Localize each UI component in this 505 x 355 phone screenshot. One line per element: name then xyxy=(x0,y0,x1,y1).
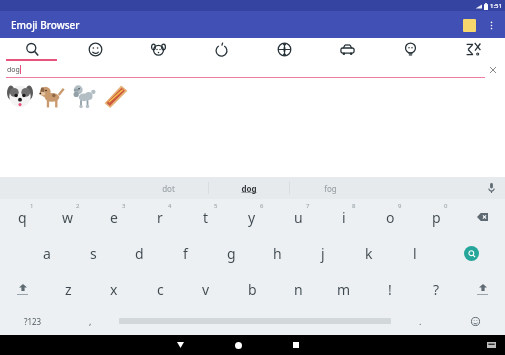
staticText: 3 xyxy=(122,202,126,210)
button[interactable]: car xyxy=(316,38,379,61)
button[interactable]: m xyxy=(321,271,367,307)
staticText: l xyxy=(413,244,417,263)
button[interactable]: dog xyxy=(127,38,190,61)
button[interactable]: Emoji keyboard xyxy=(445,307,505,335)
button[interactable]: search xyxy=(0,38,64,61)
staticText: p xyxy=(432,208,441,227)
button[interactable]: dog xyxy=(7,61,486,78)
button[interactable]: y xyxy=(229,199,275,235)
staticText: . xyxy=(419,315,422,327)
button[interactable]: u xyxy=(275,199,321,235)
button[interactable]: b xyxy=(229,271,275,307)
staticText: d xyxy=(135,244,144,263)
button[interactable]: Switch keyboard xyxy=(477,335,505,355)
button[interactable]: l xyxy=(392,235,438,271)
staticText: j xyxy=(321,244,325,263)
button[interactable]: z xyxy=(45,271,91,307)
staticText: 7 xyxy=(306,202,310,210)
button[interactable]: Clear search xyxy=(486,63,500,77)
button[interactable]: v xyxy=(183,271,229,307)
button[interactable]: p xyxy=(413,199,459,235)
button[interactable]: Poodle xyxy=(68,80,100,112)
staticText: , xyxy=(89,315,92,327)
staticText: z xyxy=(65,280,72,299)
staticText: 9 xyxy=(398,202,402,210)
staticText: 6 xyxy=(260,202,264,210)
staticText: c xyxy=(157,280,164,299)
staticText: dog xyxy=(7,65,20,75)
button[interactable]: r xyxy=(137,199,183,235)
staticText: 1 xyxy=(30,202,34,210)
staticText: s xyxy=(90,244,97,263)
button[interactable]: Recents xyxy=(267,335,325,355)
button[interactable]: , xyxy=(65,307,115,335)
button[interactable]: d xyxy=(116,235,162,271)
button[interactable]: bulb xyxy=(379,38,442,61)
staticText: b xyxy=(248,280,257,299)
button[interactable]: dog xyxy=(209,177,289,199)
staticText: u xyxy=(294,208,303,227)
button[interactable]: f xyxy=(162,235,208,271)
staticText: ? xyxy=(433,280,440,299)
staticText: x xyxy=(110,280,118,299)
button[interactable]: g xyxy=(208,235,254,271)
staticText: dot xyxy=(162,183,175,194)
button[interactable]: c xyxy=(137,271,183,307)
button[interactable]: a xyxy=(24,235,70,271)
staticText: q xyxy=(18,208,27,227)
staticText: a xyxy=(43,244,51,263)
staticText: v xyxy=(202,280,210,299)
button[interactable]: t xyxy=(183,199,229,235)
staticText: 0 xyxy=(444,202,448,210)
button[interactable]: Search xyxy=(438,235,505,271)
staticText: Emoji Browser xyxy=(11,18,80,32)
button[interactable]: Pick colour xyxy=(457,13,481,37)
staticText: 5 xyxy=(214,202,218,210)
button[interactable]: Space xyxy=(115,307,395,335)
staticText: fog xyxy=(324,183,337,194)
button[interactable]: Shift xyxy=(0,271,45,307)
button[interactable]: Dog xyxy=(36,80,68,112)
button[interactable]: ?123 xyxy=(0,307,65,335)
button[interactable]: s xyxy=(70,235,116,271)
button[interactable]: q xyxy=(0,199,45,235)
button[interactable]: smile xyxy=(64,38,127,61)
staticText: m xyxy=(337,280,351,299)
button[interactable]: x xyxy=(91,271,137,307)
button[interactable]: w xyxy=(45,199,91,235)
staticText: o xyxy=(386,208,395,227)
button[interactable]: e xyxy=(91,199,137,235)
button[interactable]: dot xyxy=(128,177,208,199)
staticText: 1:51 xyxy=(490,2,502,10)
button[interactable]: i xyxy=(321,199,367,235)
staticText: k xyxy=(365,244,373,263)
button[interactable]: n xyxy=(275,271,321,307)
button[interactable]: Dog face xyxy=(4,80,36,112)
staticText: w xyxy=(62,208,74,227)
button[interactable]: ! xyxy=(367,271,413,307)
staticText: t xyxy=(203,208,209,227)
staticText: dog xyxy=(241,183,257,194)
button[interactable]: ? xyxy=(413,271,459,307)
button[interactable]: j xyxy=(300,235,346,271)
staticText: f xyxy=(183,244,188,263)
button[interactable]: fog xyxy=(290,177,370,199)
staticText: e xyxy=(110,208,118,227)
button[interactable]: Home xyxy=(209,335,267,355)
button[interactable]: k xyxy=(346,235,392,271)
button[interactable]: ball xyxy=(253,38,316,61)
button[interactable]: Backspace xyxy=(459,199,505,235)
button[interactable]: sym xyxy=(442,38,505,61)
staticText: y xyxy=(248,208,256,227)
button[interactable]: More options xyxy=(481,15,501,35)
button[interactable]: Voice input xyxy=(477,177,505,199)
button[interactable]: h xyxy=(254,235,300,271)
button[interactable]: Shift xyxy=(459,271,505,307)
button[interactable]: o xyxy=(367,199,413,235)
button[interactable]: Hide keyboard xyxy=(151,335,209,355)
staticText: ! xyxy=(388,280,392,299)
button[interactable]: apple xyxy=(190,38,253,61)
staticText: 2 xyxy=(76,202,80,210)
button[interactable]: Hot dog xyxy=(100,80,132,112)
